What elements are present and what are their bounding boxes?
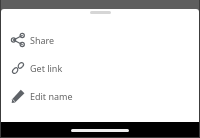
button[interactable]: Get link: [1, 54, 199, 82]
button[interactable]: Share: [1, 26, 199, 54]
staticText: Share: [30, 34, 55, 46]
staticText: Get link: [30, 62, 63, 74]
staticText: Edit name: [30, 90, 73, 102]
button[interactable]: Edit name: [1, 82, 199, 110]
